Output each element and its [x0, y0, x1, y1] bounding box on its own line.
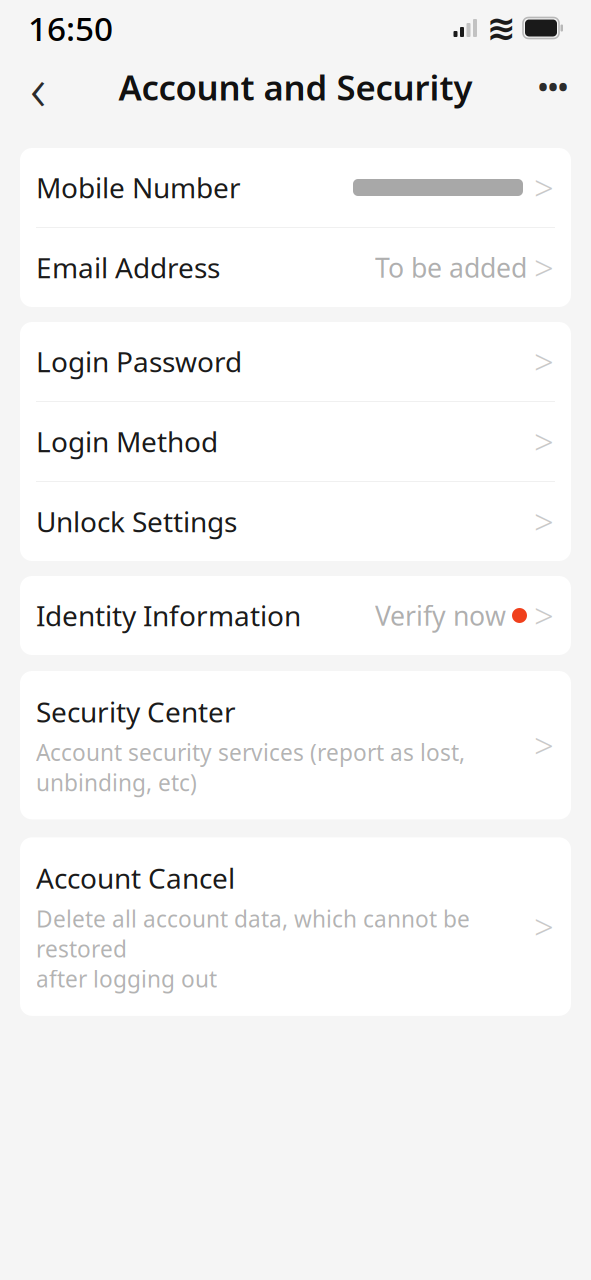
staticText: >	[534, 338, 554, 384]
button[interactable]: Unlock Settings	[20, 482, 571, 561]
staticText: ≋	[486, 8, 515, 48]
button[interactable]: Identity Information	[20, 576, 571, 655]
button[interactable]: Account Cancel	[20, 837, 571, 1016]
staticText: Unlock Settings	[36, 503, 237, 540]
staticText: Mobile Number	[36, 169, 241, 206]
staticText: Verify now	[375, 598, 506, 633]
button[interactable]: Security Center	[20, 671, 571, 819]
staticText: Account security services (report as los…	[36, 737, 465, 797]
button[interactable]: Back	[12, 61, 64, 113]
staticText: Account and Security	[118, 64, 472, 110]
button[interactable]: Mobile Number	[20, 148, 571, 227]
staticText: >	[534, 592, 554, 638]
staticText: Delete all account data, which cannot be…	[36, 904, 470, 994]
staticText: Login Method	[36, 423, 218, 460]
staticText: Security Center	[36, 693, 236, 730]
button[interactable]: More options	[527, 61, 579, 113]
staticText: To be added	[375, 250, 527, 285]
button[interactable]: Login Method	[20, 402, 571, 481]
staticText: Account Cancel	[36, 859, 235, 897]
staticText: 16:50	[28, 6, 113, 50]
staticText: >	[534, 418, 554, 464]
button[interactable]: Login Password	[20, 322, 571, 401]
staticText: >	[534, 904, 554, 950]
staticText: •••	[538, 69, 568, 105]
staticText: >	[534, 244, 554, 290]
staticText: >	[534, 164, 554, 210]
staticText: Login Password	[36, 343, 242, 380]
staticText: Identity Information	[36, 597, 301, 634]
button[interactable]: Email Address	[20, 228, 571, 307]
staticText: Email Address	[36, 249, 220, 286]
staticText: >	[534, 722, 554, 768]
staticText: >	[534, 498, 554, 544]
staticText: ‹	[30, 46, 46, 128]
